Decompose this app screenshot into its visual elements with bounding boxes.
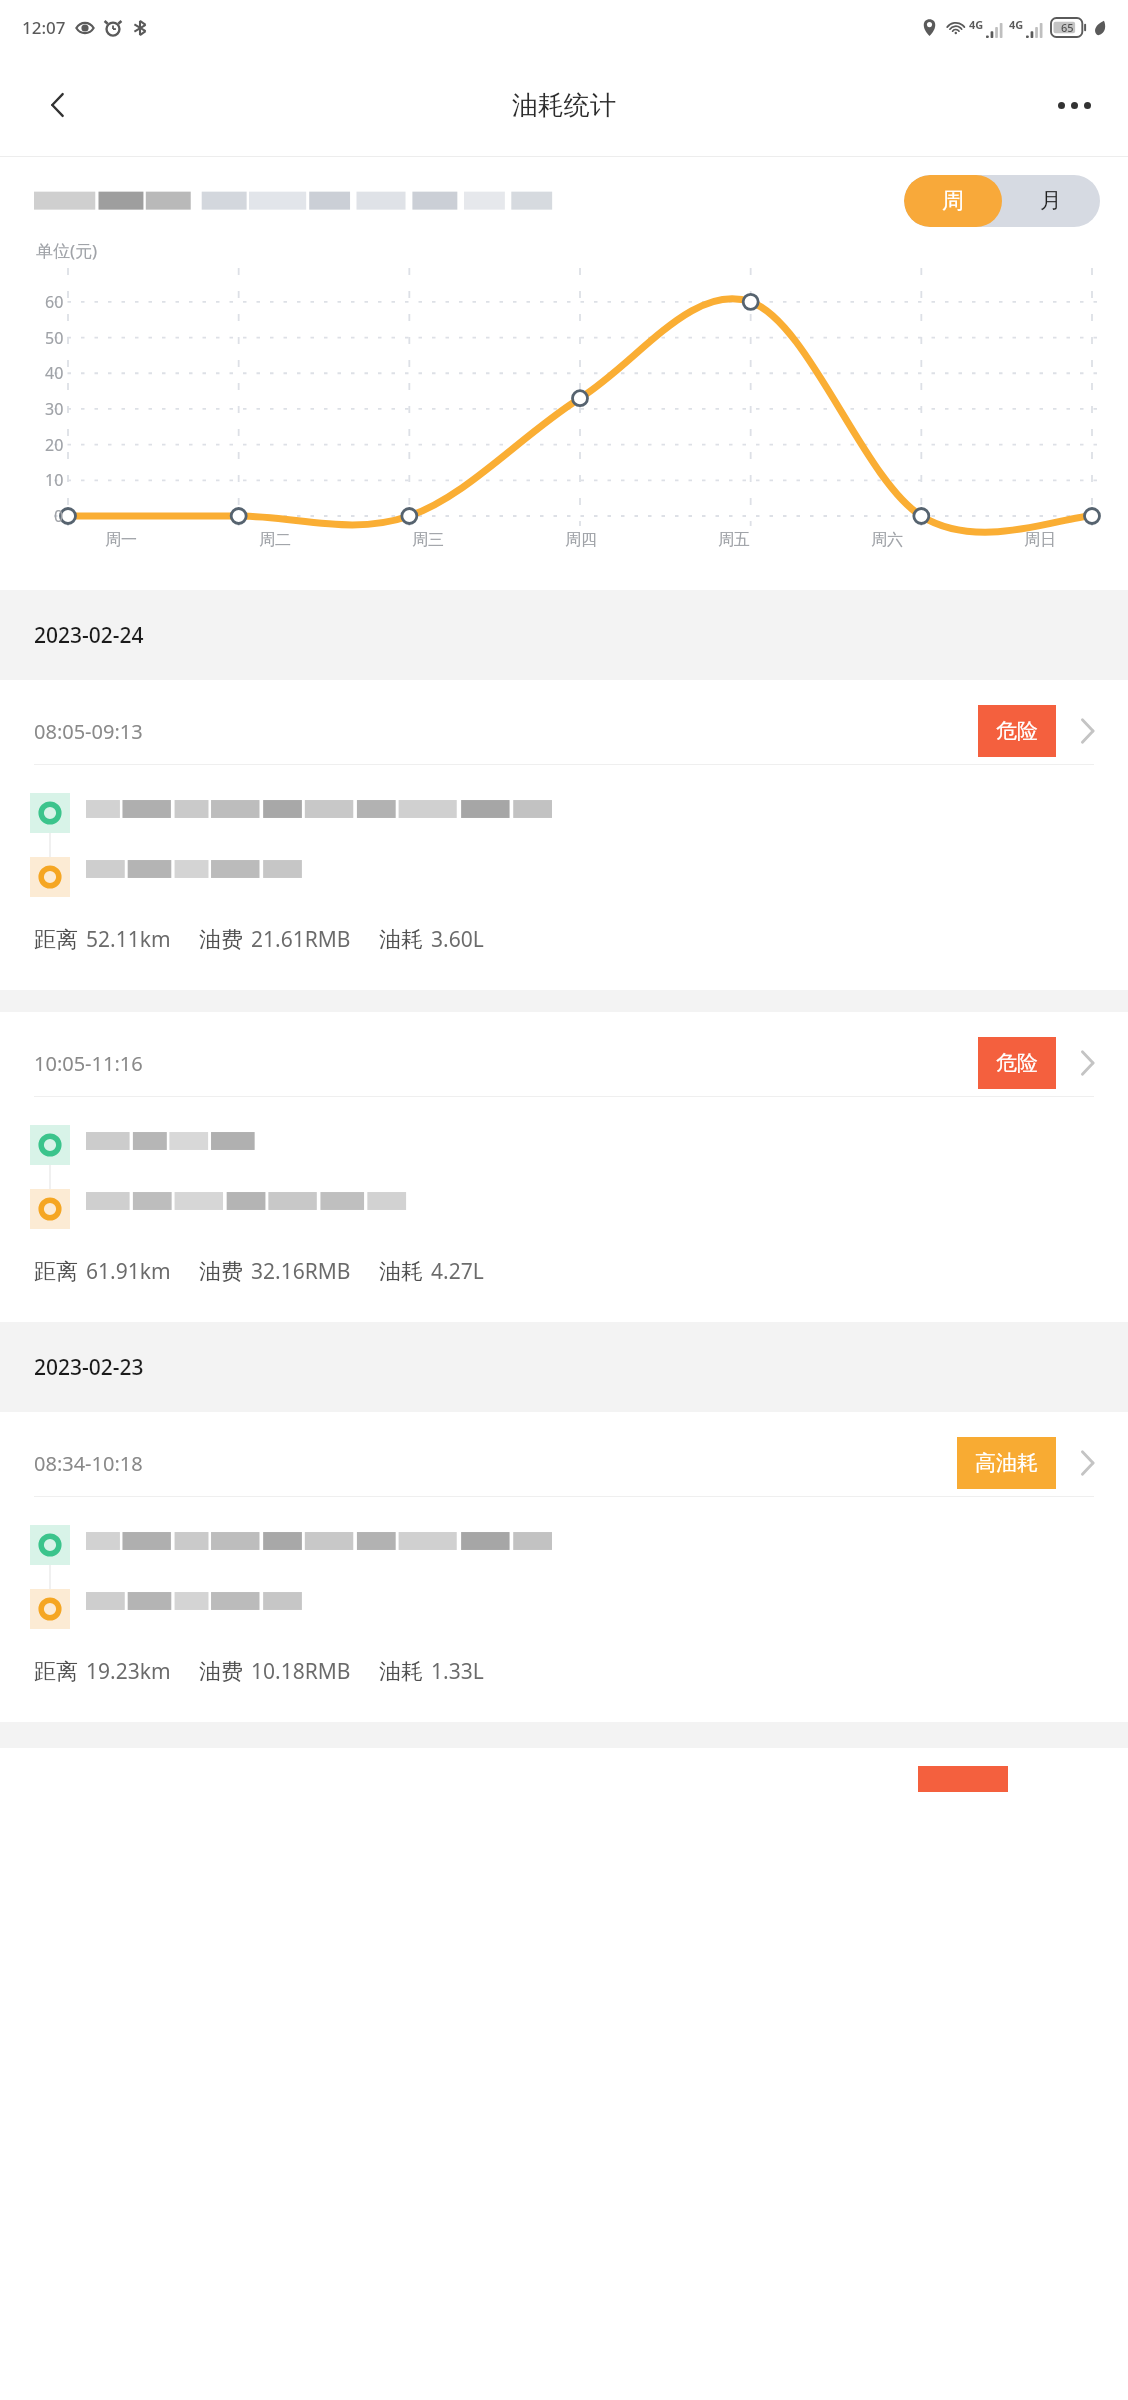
- staticText: 油耗: [379, 1658, 423, 1686]
- button[interactable]: More options: [1046, 77, 1102, 133]
- staticText: 距离: [34, 926, 78, 954]
- staticText: 60: [45, 291, 64, 313]
- staticText: 61.91km: [86, 1257, 171, 1286]
- staticText: 08:34-10:18: [34, 1450, 143, 1477]
- staticText: 周日: [1024, 530, 1056, 550]
- staticText: 距离: [34, 1658, 78, 1686]
- staticText: 4G: [1009, 17, 1024, 32]
- staticText: 油耗: [379, 926, 423, 954]
- staticText: 0: [54, 505, 64, 527]
- other: Trip details: [1074, 1049, 1102, 1077]
- staticText: 12:07: [22, 16, 66, 39]
- staticText: 21.61RMB: [251, 925, 351, 954]
- staticText: 20: [45, 434, 64, 456]
- other: Trip details: [1074, 717, 1102, 745]
- staticText: 危险: [996, 718, 1038, 744]
- staticText: 油费: [199, 926, 243, 954]
- staticText: 2023-02-23: [34, 1353, 144, 1382]
- staticText: 高油耗: [975, 1450, 1038, 1476]
- other: Trip details: [1074, 1449, 1102, 1477]
- staticText: 10:05-11:16: [34, 1050, 143, 1077]
- staticText: 周二: [259, 530, 291, 550]
- staticText: 周五: [718, 530, 750, 550]
- staticText: 3.60L: [431, 925, 484, 954]
- staticText: 10: [45, 469, 64, 491]
- staticText: 油费: [199, 1258, 243, 1286]
- staticText: 08:05-09:13: [34, 718, 143, 745]
- staticText: 危险: [996, 1050, 1038, 1076]
- button[interactable]: 08:34-10:18: [0, 1412, 1128, 1722]
- button[interactable]: 08:05-09:13: [0, 680, 1128, 990]
- button[interactable]: 月: [1002, 175, 1100, 227]
- staticText: 10.18RMB: [251, 1657, 351, 1686]
- button[interactable]: Back: [30, 77, 86, 133]
- button[interactable]: 10:05-11:16: [0, 1012, 1128, 1322]
- staticText: 4.27L: [431, 1257, 484, 1286]
- staticText: 周一: [105, 530, 137, 550]
- staticText: 周三: [412, 530, 444, 550]
- staticText: 周: [942, 187, 964, 215]
- staticText: 月: [1040, 187, 1062, 215]
- staticText: 30: [45, 398, 64, 420]
- staticText: 油耗统计: [512, 89, 616, 122]
- staticText: 油费: [199, 1658, 243, 1686]
- staticText: 65: [1061, 20, 1074, 35]
- staticText: 2023-02-24: [34, 621, 144, 650]
- staticText: 单位(元): [36, 239, 98, 262]
- staticText: 32.16RMB: [251, 1257, 351, 1286]
- staticText: 4G: [969, 17, 984, 32]
- staticText: 40: [45, 362, 64, 384]
- staticText: 52.11km: [86, 925, 171, 954]
- staticText: 距离: [34, 1258, 78, 1286]
- button[interactable]: 周: [904, 175, 1002, 227]
- staticText: 1.33L: [431, 1657, 484, 1686]
- staticText: 油耗: [379, 1258, 423, 1286]
- staticText: 50: [45, 327, 64, 349]
- staticText: 19.23km: [86, 1657, 171, 1686]
- staticText: 周六: [871, 530, 903, 550]
- staticText: 周四: [565, 530, 597, 550]
